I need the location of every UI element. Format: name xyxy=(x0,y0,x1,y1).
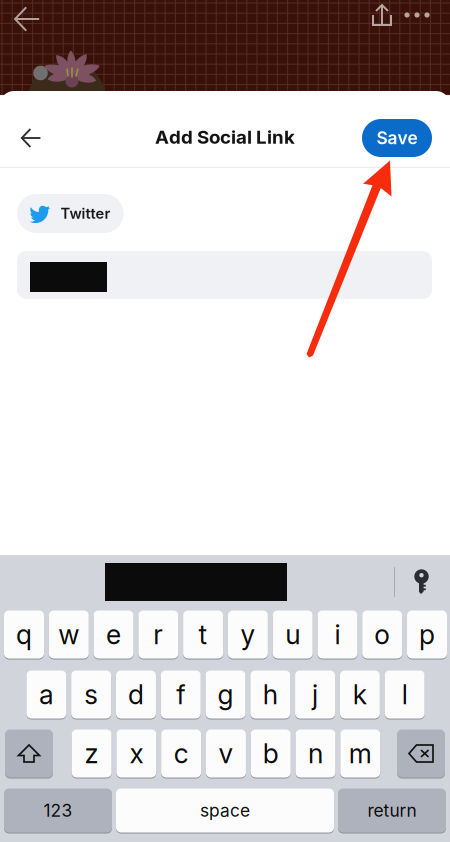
staticText: 123 xyxy=(43,800,72,821)
button[interactable]: j xyxy=(295,670,335,719)
button[interactable]: r xyxy=(138,610,178,659)
button[interactable]: k xyxy=(340,670,380,719)
button[interactable]: a xyxy=(26,670,66,719)
staticText: y xyxy=(240,618,255,651)
staticText: e xyxy=(106,618,121,651)
staticText: Twitter xyxy=(61,205,111,222)
button[interactable]: Shift xyxy=(5,729,53,778)
staticText: l xyxy=(402,678,408,711)
button[interactable]: Save xyxy=(362,119,432,157)
staticText: d xyxy=(128,678,144,711)
button[interactable]: Back xyxy=(9,116,53,160)
staticText: x xyxy=(129,737,143,770)
button[interactable]: y xyxy=(228,610,268,659)
button[interactable]: Twitter xyxy=(17,194,124,233)
button[interactable]: t xyxy=(183,610,223,659)
staticText: w xyxy=(58,618,79,651)
button[interactable]: q xyxy=(4,610,44,659)
button[interactable]: n xyxy=(295,729,335,778)
staticText: g xyxy=(217,678,233,711)
button[interactable]: z xyxy=(72,729,112,778)
staticText: k xyxy=(353,678,367,711)
button[interactable]: p xyxy=(407,610,447,659)
button[interactable]: Delete xyxy=(397,729,445,778)
button[interactable]: w xyxy=(49,610,89,659)
staticText: n xyxy=(308,737,323,770)
button[interactable]: f xyxy=(161,670,201,719)
staticText: s xyxy=(84,678,98,711)
button[interactable]: v xyxy=(206,729,246,778)
staticText: q xyxy=(16,618,32,651)
staticText: v xyxy=(218,737,233,770)
staticText: j xyxy=(312,678,318,711)
staticText: o xyxy=(374,618,390,651)
staticText: z xyxy=(85,737,99,770)
button[interactable]: d xyxy=(116,670,156,719)
button[interactable]: o xyxy=(362,610,402,659)
button[interactable]: m xyxy=(340,729,380,778)
staticText: Save xyxy=(376,127,417,148)
button[interactable]: 123 xyxy=(4,788,112,833)
staticText: p xyxy=(419,618,435,651)
button[interactable]: return xyxy=(338,788,446,833)
button[interactable]: l xyxy=(385,670,425,719)
staticText: r xyxy=(153,618,163,651)
staticText: return xyxy=(367,800,416,821)
staticText: a xyxy=(39,678,54,711)
staticText: h xyxy=(263,678,278,711)
button[interactable]: Passwords xyxy=(402,560,442,604)
staticText: u xyxy=(285,618,300,651)
button[interactable]: h xyxy=(250,670,290,719)
button[interactable]: i xyxy=(317,610,357,659)
staticText: c xyxy=(174,737,189,770)
button[interactable]: x xyxy=(116,729,156,778)
button[interactable]: space xyxy=(116,788,334,833)
staticText: m xyxy=(349,737,372,770)
button[interactable]: c xyxy=(161,729,201,778)
button[interactable]: b xyxy=(251,729,291,778)
staticText: Add Social Link xyxy=(155,126,295,148)
staticText: i xyxy=(334,618,340,651)
staticText: b xyxy=(263,737,279,770)
staticText: f xyxy=(176,678,185,711)
button[interactable]: g xyxy=(205,670,245,719)
button[interactable]: u xyxy=(273,610,313,659)
staticText: t xyxy=(199,618,208,651)
button[interactable]: s xyxy=(71,670,111,719)
button[interactable]: e xyxy=(94,610,134,659)
staticText: space xyxy=(200,800,250,821)
